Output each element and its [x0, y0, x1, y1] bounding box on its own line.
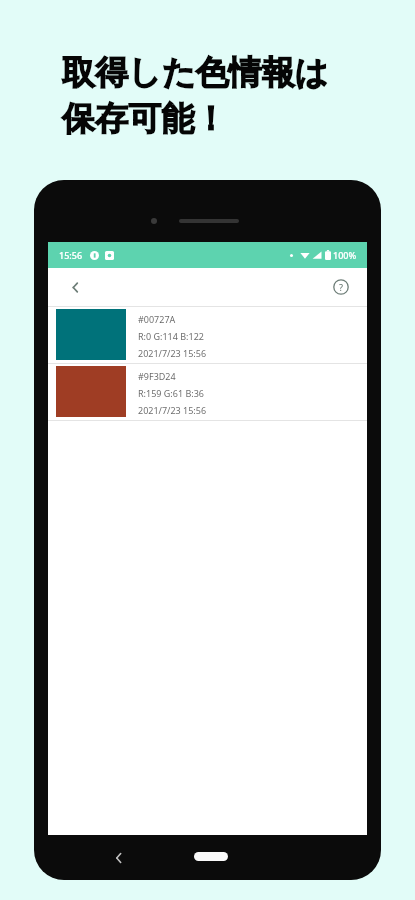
staticText: R:0 G:114 B:122 [138, 330, 204, 342]
staticText: 保存可能！ [62, 98, 227, 140]
staticText: #00727A [138, 313, 176, 325]
staticText: #9F3D24 [138, 370, 176, 382]
button[interactable]: Back [62, 274, 88, 300]
button[interactable]: #9F3D24 [48, 363, 367, 420]
staticText: 15:56 [59, 249, 83, 261]
staticText: 2021/7/23 15:56 [138, 347, 207, 359]
button[interactable]: #00727A [48, 306, 367, 363]
staticText: 取得した色情報は [62, 52, 329, 94]
staticText: 100% [333, 249, 357, 261]
button[interactable]: Help [328, 274, 354, 300]
button[interactable]: Home [194, 852, 228, 861]
staticText: 2021/7/23 15:56 [138, 404, 207, 416]
staticText: ? [339, 281, 344, 293]
staticText: R:159 G:61 B:36 [138, 387, 204, 399]
button[interactable]: Back [106, 845, 132, 871]
